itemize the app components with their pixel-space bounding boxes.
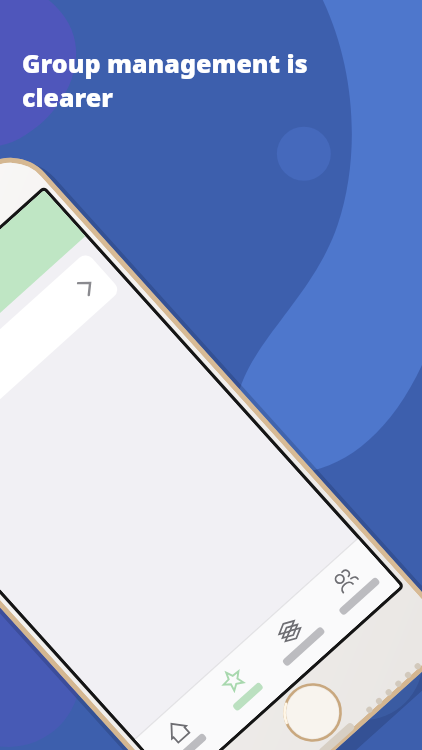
staticText: clearer: [22, 80, 113, 114]
button[interactable]: About Me: [312, 477, 356, 513]
staticText: Group management is: [22, 46, 308, 80]
